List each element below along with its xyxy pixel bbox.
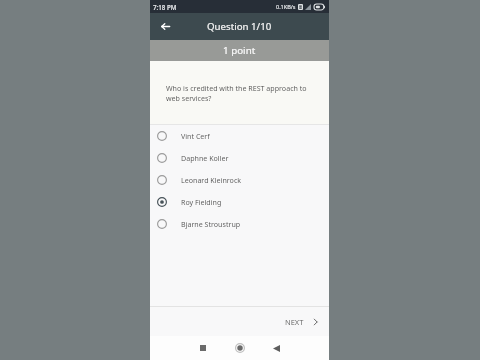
button[interactable]: Vint Cerf [150,125,329,147]
button[interactable]: Home [229,337,251,359]
staticText: Who is credited with the REST approach t… [166,83,319,103]
staticText: Leonard Kleinrock [181,175,242,185]
button[interactable]: NEXT [276,312,329,332]
staticText: 7:18 PM [153,3,177,11]
staticText: Question 1/10 [207,20,272,33]
staticText: Bjarne Stroustrup [181,219,241,229]
staticText: Roy Fielding [181,197,222,207]
button[interactable]: Bjarne Stroustrup [150,213,329,235]
staticText: Daphne Koller [181,153,229,163]
button[interactable]: Recent apps [192,337,214,359]
staticText: Vint Cerf [181,131,210,141]
staticText: NEXT [285,317,304,327]
button[interactable]: Daphne Koller [150,147,329,169]
button[interactable]: Back [155,16,176,37]
button[interactable]: Roy Fielding [150,191,329,213]
staticText: 0.1KB/s [276,3,296,10]
staticText: 1 point [223,44,256,57]
button[interactable]: Back [265,337,287,359]
button[interactable]: Leonard Kleinrock [150,169,329,191]
